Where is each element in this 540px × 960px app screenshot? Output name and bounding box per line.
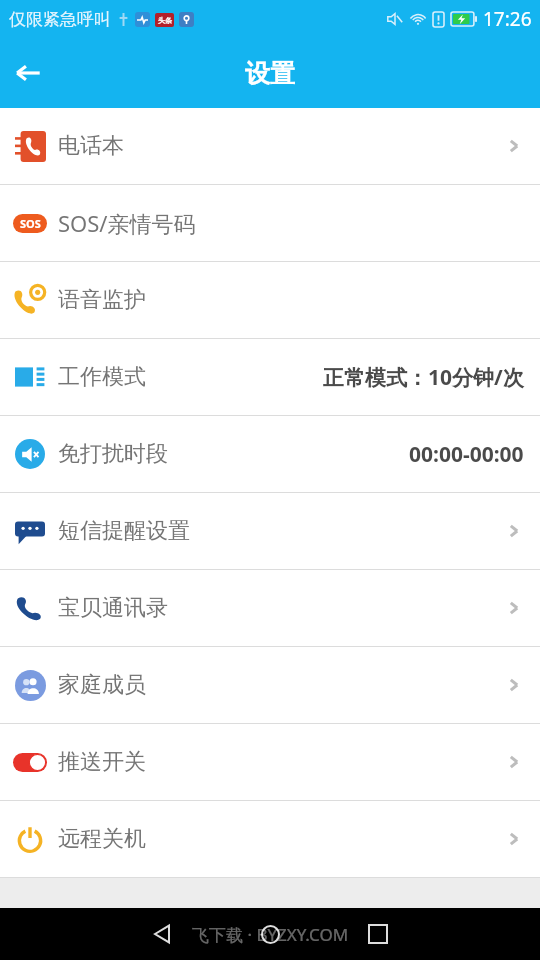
staticText: 推送开关	[58, 748, 146, 776]
staticText: 仅限紧急呼叫	[9, 9, 111, 30]
button[interactable]: SOS	[0, 185, 540, 261]
staticText: 00:00-00:00	[409, 440, 524, 469]
button[interactable]: Back	[0, 45, 56, 101]
button[interactable]: 推送开关	[0, 724, 540, 800]
staticText: 设置	[245, 58, 295, 89]
button[interactable]: 家庭成员	[0, 647, 540, 723]
staticText: 工作模式	[58, 363, 146, 391]
button[interactable]: 工作模式	[0, 339, 540, 415]
staticText: 宝贝通讯录	[58, 594, 168, 622]
staticText: 头条	[158, 16, 172, 25]
button[interactable]: 语音监护	[0, 262, 540, 338]
staticText: 远程关机	[58, 825, 146, 853]
staticText: 正常模式：10分钟/次	[323, 363, 524, 392]
staticText: 家庭成员	[58, 671, 146, 699]
button[interactable]: 远程关机	[0, 801, 540, 877]
button[interactable]: 短信提醒设置	[0, 493, 540, 569]
staticText: SOS/亲情号码	[58, 208, 196, 238]
staticText: 免打扰时段	[58, 440, 168, 468]
button[interactable]: 宝贝通讯录	[0, 570, 540, 646]
button[interactable]: 免打扰时段	[0, 416, 540, 492]
button[interactable]: Recents	[352, 908, 404, 960]
button[interactable]: Home	[244, 908, 296, 960]
staticText: 语音监护	[58, 286, 146, 314]
staticText: 电话本	[58, 132, 124, 160]
staticText: 17:26	[483, 6, 532, 32]
button[interactable]: 电话本	[0, 108, 540, 184]
staticText: 飞下载 · BYZXY.COM	[192, 923, 349, 946]
staticText: 短信提醒设置	[58, 517, 190, 545]
staticText: SOS	[20, 216, 41, 231]
button[interactable]: Back	[136, 908, 188, 960]
